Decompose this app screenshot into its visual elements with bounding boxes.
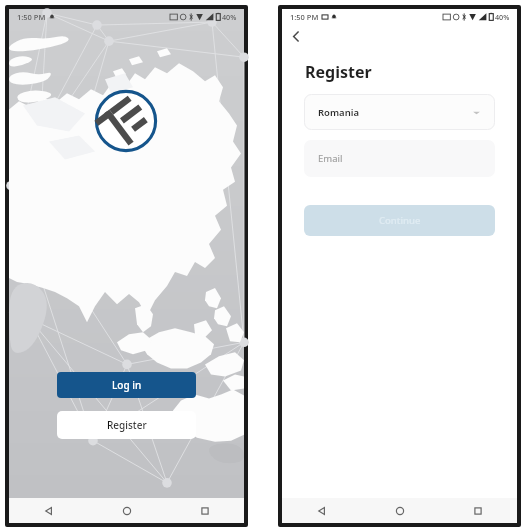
button[interactable]: Romania [304, 94, 495, 130]
button[interactable]: Email [304, 140, 495, 177]
button[interactable]: Register [57, 411, 196, 439]
button[interactable]: Back [9, 498, 88, 523]
staticText: Register [107, 418, 147, 432]
staticText: Log in [112, 378, 142, 392]
staticText: 40% [495, 12, 510, 22]
staticText: 1:50 PM [17, 12, 46, 22]
staticText: Email [318, 152, 343, 165]
button[interactable]: Recents [439, 498, 517, 523]
staticText: Register [305, 61, 372, 83]
button[interactable]: Continue [304, 205, 495, 236]
button[interactable]: Recents [166, 498, 244, 523]
button[interactable]: Home [361, 498, 439, 523]
button[interactable]: Back [286, 26, 306, 46]
staticText: 1:50 PM [290, 12, 319, 22]
button[interactable]: Home [88, 498, 166, 523]
button[interactable]: Log in [57, 372, 196, 398]
staticText: Continue [379, 214, 421, 227]
staticText: Romania [318, 106, 359, 119]
staticText: 40% [222, 12, 237, 22]
button[interactable]: Back [282, 498, 361, 523]
